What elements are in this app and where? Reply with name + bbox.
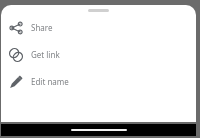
other: Share xyxy=(9,21,23,35)
button[interactable]: Edit name xyxy=(1,68,196,95)
button[interactable]: Get link xyxy=(1,41,196,68)
staticText: Edit name xyxy=(31,76,69,87)
staticText: Share xyxy=(31,22,53,33)
other: Get link xyxy=(9,48,23,62)
other: Edit name xyxy=(9,75,23,89)
staticText: Get link xyxy=(31,49,60,60)
button[interactable]: Share xyxy=(1,14,196,41)
